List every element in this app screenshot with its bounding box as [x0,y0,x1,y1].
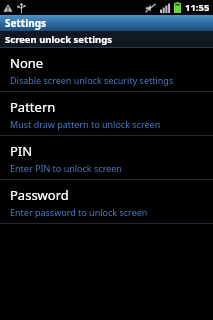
staticText: Enter password to unlock screen [10,206,148,218]
staticText: Disable screen unlock security settings [10,74,174,86]
staticText: Enter PIN to unlock screen [10,162,122,174]
button[interactable]: Password [0,180,213,223]
staticText: Settings [5,16,46,30]
staticText: Must draw pattern to unlock screen [10,118,161,130]
staticText: PIN [10,142,33,160]
button[interactable]: None [0,48,213,91]
staticText: Screen unlock settings [5,33,113,46]
staticText: Pattern [10,98,56,116]
button[interactable]: Pattern [0,92,213,135]
staticText: None [10,54,44,72]
button[interactable]: PIN [0,136,213,179]
staticText: 11:55 [185,1,210,14]
staticText: Password [10,186,69,204]
